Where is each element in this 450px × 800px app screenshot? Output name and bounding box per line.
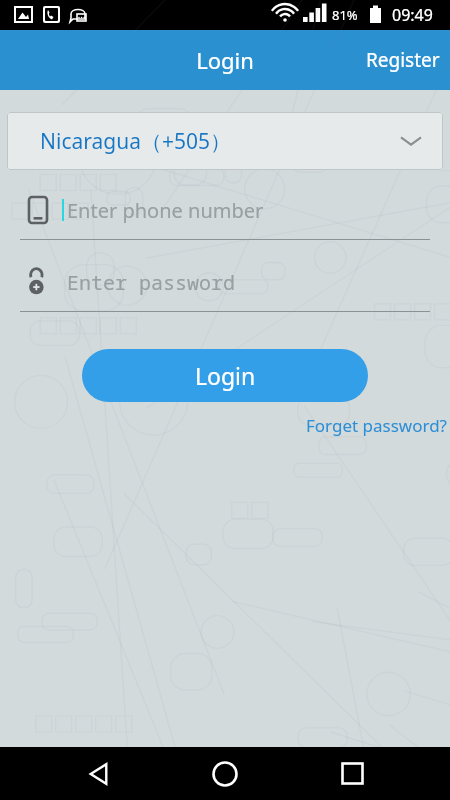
staticText: Login	[196, 45, 254, 75]
button[interactable]: Phone	[20, 190, 430, 240]
button[interactable]: Back	[71, 747, 127, 800]
staticText: Enter phone number	[67, 197, 264, 224]
staticText: Enter password	[67, 269, 235, 296]
staticText: Forget password?	[306, 414, 447, 437]
staticText: 09:49	[392, 4, 433, 26]
other: Password	[28, 268, 50, 296]
staticText: Nicaragua（+505）	[40, 127, 231, 156]
button[interactable]: Recent apps	[324, 747, 380, 800]
button[interactable]: Forget password?	[306, 410, 450, 441]
other: Phone	[28, 196, 48, 224]
button[interactable]: Register	[356, 35, 450, 85]
button[interactable]: Home	[197, 747, 253, 800]
button[interactable]: Password	[20, 262, 430, 312]
staticText: Register	[366, 47, 440, 73]
button[interactable]: Login	[82, 349, 368, 402]
staticText: 81%	[332, 6, 358, 24]
button[interactable]: Nicaragua（+505）	[7, 112, 443, 170]
staticText: Login	[195, 360, 256, 391]
